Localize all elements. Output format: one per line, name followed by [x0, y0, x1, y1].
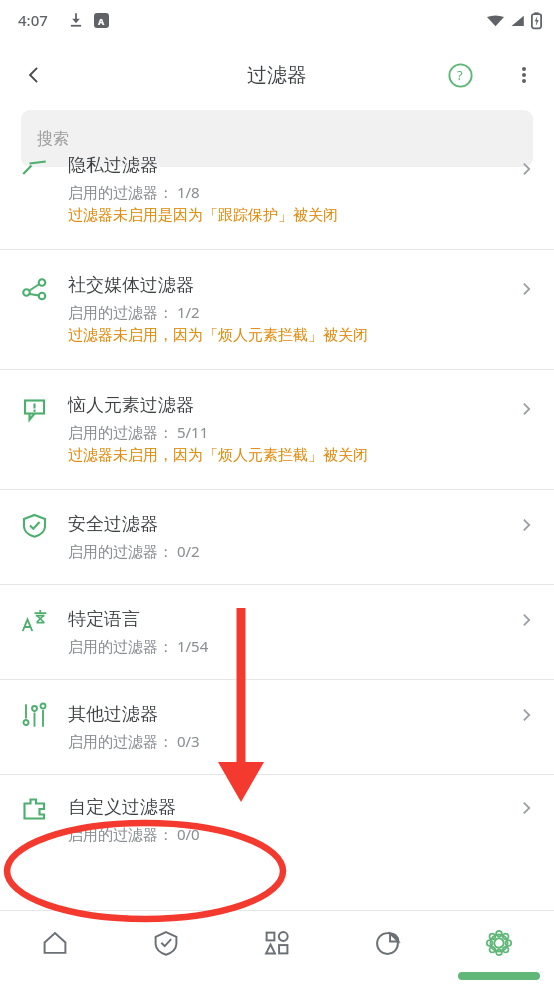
button[interactable]: 自定义过滤器 [0, 775, 554, 864]
staticText: 启用的过滤器： 0/3 [68, 731, 200, 751]
button[interactable]: Settings [443, 910, 554, 976]
staticText: 隐私过滤器 [68, 154, 158, 177]
button[interactable]: Apps [221, 910, 332, 976]
staticText: 社交媒体过滤器 [68, 274, 194, 297]
button[interactable]: Home [0, 910, 110, 976]
button[interactable]: Help [438, 53, 482, 97]
button[interactable]: 恼人元素过滤器 [0, 370, 554, 489]
staticText: 搜索 [37, 129, 69, 149]
staticText: 启用的过滤器： 1/2 [68, 302, 200, 322]
staticText: 自定义过滤器 [68, 796, 176, 819]
button[interactable]: Statistics [332, 910, 443, 976]
staticText: 启用的过滤器： 0/2 [68, 541, 200, 561]
staticText: 过滤器未启用，因为「烦人元素拦截」被关闭 [68, 446, 368, 465]
button[interactable]: 社交媒体过滤器 [0, 250, 554, 369]
staticText: 启用的过滤器： 1/8 [68, 182, 200, 202]
button[interactable]: More options [502, 53, 546, 97]
staticText: ? [457, 66, 463, 84]
button[interactable]: Back [10, 51, 58, 99]
staticText: 4:07 [18, 10, 48, 30]
button[interactable]: 隐私过滤器 [0, 130, 554, 249]
staticText: 恼人元素过滤器 [68, 394, 194, 417]
staticText: 启用的过滤器： 1/54 [68, 636, 209, 656]
staticText: 启用的过滤器： 5/11 [68, 422, 209, 442]
button[interactable]: 其他过滤器 [0, 680, 554, 774]
staticText: 特定语言 [68, 608, 140, 631]
button[interactable]: 特定语言 [0, 585, 554, 679]
button[interactable]: Protection [110, 910, 221, 976]
staticText: 其他过滤器 [68, 703, 158, 726]
staticText: 过滤器未启用是因为「跟踪保护」被关闭 [68, 206, 338, 225]
button[interactable]: 安全过滤器 [0, 490, 554, 584]
staticText: A [98, 15, 105, 27]
staticText: 启用的过滤器： 0/0 [68, 824, 200, 844]
button[interactable]: 搜索 [21, 110, 533, 167]
staticText: 过滤器 [247, 63, 307, 88]
staticText: 过滤器未启用，因为「烦人元素拦截」被关闭 [68, 326, 368, 345]
staticText: 安全过滤器 [68, 513, 158, 536]
